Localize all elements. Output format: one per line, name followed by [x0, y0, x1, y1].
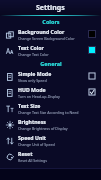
staticText: HUD Mode: [18, 86, 46, 93]
staticText: General: [40, 60, 62, 67]
button[interactable]: Text Color: [0, 42, 101, 58]
button[interactable]: Reset: [0, 148, 101, 164]
staticText: Settings: [36, 3, 65, 13]
button[interactable]: Background Color: [0, 26, 101, 42]
button[interactable]: Toggle setting: [88, 72, 96, 80]
staticText: Change Text Color: [18, 52, 49, 57]
staticText: Change Brightness of Display: [18, 126, 68, 131]
staticText: Brightness: [18, 118, 46, 125]
staticText: Reset All Settings: [18, 158, 48, 163]
button[interactable]: Brightness: [0, 116, 101, 132]
button[interactable]: Simple Mode: [0, 68, 101, 84]
staticText: Show only Speed: [18, 78, 47, 83]
button[interactable]: Text Size: [0, 100, 101, 116]
button[interactable]: Speed Unit: [0, 132, 101, 148]
staticText: Background Color: [18, 28, 65, 35]
staticText: Text Size: [18, 102, 41, 109]
button[interactable]: Toggle setting: [88, 88, 96, 96]
staticText: Turn on Head-up-Display: [18, 94, 60, 99]
staticText: Change Unit of Speed: [18, 142, 55, 147]
staticText: Simple Mode: [18, 70, 52, 77]
button[interactable]: HUD Mode: [0, 84, 101, 100]
staticText: Text Color: [18, 44, 44, 51]
staticText: Change Text Size According to Need: [18, 110, 79, 115]
staticText: Speed Unit: [18, 134, 47, 141]
staticText: Reset: [18, 150, 33, 157]
staticText: Change Screen Background Color: [18, 36, 75, 41]
staticText: Colors: [42, 18, 60, 25]
